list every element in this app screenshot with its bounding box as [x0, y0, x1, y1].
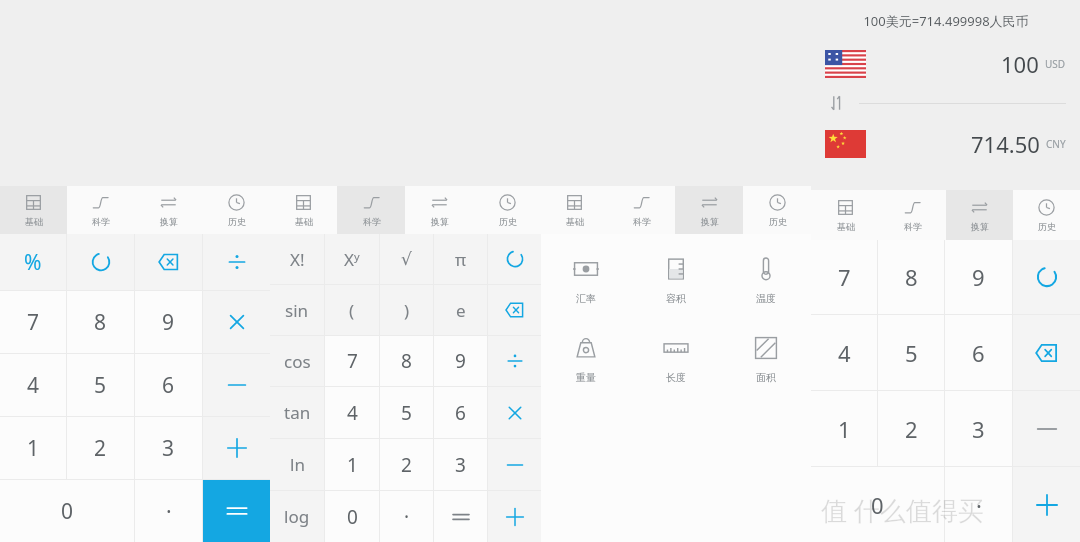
button[interactable]: X!: [270, 234, 324, 284]
button[interactable]: 1: [0, 417, 66, 479]
button[interactable]: 714.50: [825, 120, 1066, 168]
button[interactable]: 6: [945, 315, 1012, 390]
staticText: 汇率: [576, 292, 596, 305]
button[interactable]: 汇率: [541, 252, 631, 309]
button[interactable]: sin: [270, 285, 324, 335]
staticText: Xʸ: [344, 248, 360, 271]
button[interactable]: Multiply: [488, 387, 541, 438]
button[interactable]: 1: [811, 391, 877, 466]
button[interactable]: ·: [945, 467, 1012, 542]
button[interactable]: 历史: [743, 186, 811, 234]
button[interactable]: 科学: [879, 190, 946, 240]
button[interactable]: 长度: [631, 331, 721, 388]
button[interactable]: 基础: [0, 186, 67, 234]
button[interactable]: 换算: [134, 186, 202, 234]
staticText: 历史: [499, 216, 517, 227]
button[interactable]: 3: [135, 417, 202, 479]
button[interactable]: 8: [380, 336, 433, 386]
button[interactable]: log: [270, 491, 324, 542]
button[interactable]: Backspace: [488, 285, 541, 335]
button[interactable]: ·: [135, 480, 202, 542]
button[interactable]: 7: [0, 291, 66, 353]
button[interactable]: 100: [825, 40, 1066, 88]
button[interactable]: Subtract: [203, 354, 270, 416]
button[interactable]: 2: [878, 391, 944, 466]
button[interactable]: 3: [945, 391, 1012, 466]
staticText: 4: [838, 338, 851, 368]
button[interactable]: 0: [325, 491, 379, 542]
button[interactable]: 换算: [675, 186, 743, 234]
button[interactable]: Equals: [203, 480, 270, 542]
button[interactable]: 0: [0, 480, 134, 542]
staticText: 历史: [1038, 221, 1056, 232]
button[interactable]: Add: [203, 417, 270, 479]
button[interactable]: Divide: [488, 336, 541, 386]
button[interactable]: 科学: [337, 186, 405, 234]
button[interactable]: √: [380, 234, 433, 284]
button[interactable]: (: [325, 285, 379, 335]
button[interactable]: 重量: [541, 331, 631, 388]
button[interactable]: Add: [488, 491, 541, 542]
button[interactable]: e: [434, 285, 487, 335]
button[interactable]: 9: [945, 240, 1012, 314]
button[interactable]: π: [434, 234, 487, 284]
button[interactable]: 历史: [202, 186, 270, 234]
button[interactable]: 面积: [721, 331, 811, 388]
button[interactable]: %: [0, 234, 66, 290]
button[interactable]: ·: [380, 491, 433, 542]
button[interactable]: Subtract: [1013, 391, 1080, 466]
button[interactable]: 3: [434, 439, 487, 490]
button[interactable]: 基础: [270, 186, 337, 234]
button[interactable]: 换算: [405, 186, 473, 234]
button[interactable]: Xʸ: [325, 234, 379, 284]
button[interactable]: 9: [434, 336, 487, 386]
button[interactable]: cos: [270, 336, 324, 386]
button[interactable]: tan: [270, 387, 324, 438]
button[interactable]: 9: [135, 291, 202, 353]
button[interactable]: 科学: [608, 186, 675, 234]
button[interactable]: 8: [878, 240, 944, 314]
button[interactable]: 科学: [67, 186, 134, 234]
staticText: 基础: [295, 216, 313, 227]
button[interactable]: Divide: [203, 234, 270, 290]
button[interactable]: 0: [811, 467, 944, 542]
button[interactable]: 历史: [473, 186, 541, 234]
staticText: 基础: [566, 216, 584, 227]
button[interactable]: Clear: [488, 234, 541, 284]
button[interactable]: ): [380, 285, 433, 335]
button[interactable]: Clear: [67, 234, 134, 290]
button[interactable]: 7: [325, 336, 379, 386]
button[interactable]: 历史: [1013, 190, 1080, 240]
button[interactable]: ln: [270, 439, 324, 490]
button[interactable]: 5: [67, 354, 134, 416]
button[interactable]: 7: [811, 240, 877, 314]
button[interactable]: 8: [67, 291, 134, 353]
button[interactable]: 基础: [541, 186, 608, 234]
staticText: 7: [838, 262, 851, 292]
button[interactable]: 6: [135, 354, 202, 416]
button[interactable]: 4: [0, 354, 66, 416]
button[interactable]: 5: [878, 315, 944, 390]
button[interactable]: 4: [811, 315, 877, 390]
staticText: 重量: [576, 371, 596, 384]
button[interactable]: Subtract: [488, 439, 541, 490]
button[interactable]: 2: [67, 417, 134, 479]
button[interactable]: Backspace: [135, 234, 202, 290]
button[interactable]: Add: [1013, 467, 1080, 542]
button[interactable]: 6: [434, 387, 487, 438]
button[interactable]: Swap currencies: [825, 91, 849, 115]
button[interactable]: 5: [380, 387, 433, 438]
staticText: X!: [290, 248, 305, 271]
button[interactable]: 基础: [811, 190, 879, 240]
button[interactable]: Equals: [434, 491, 487, 542]
button[interactable]: Backspace: [1013, 315, 1080, 390]
button[interactable]: Clear: [1013, 240, 1080, 314]
button[interactable]: 换算: [946, 190, 1013, 240]
button[interactable]: 1: [325, 439, 379, 490]
button[interactable]: 2: [380, 439, 433, 490]
staticText: 1: [347, 452, 358, 478]
button[interactable]: 4: [325, 387, 379, 438]
button[interactable]: 温度: [721, 252, 811, 309]
button[interactable]: Multiply: [203, 291, 270, 353]
button[interactable]: 容积: [631, 252, 721, 309]
